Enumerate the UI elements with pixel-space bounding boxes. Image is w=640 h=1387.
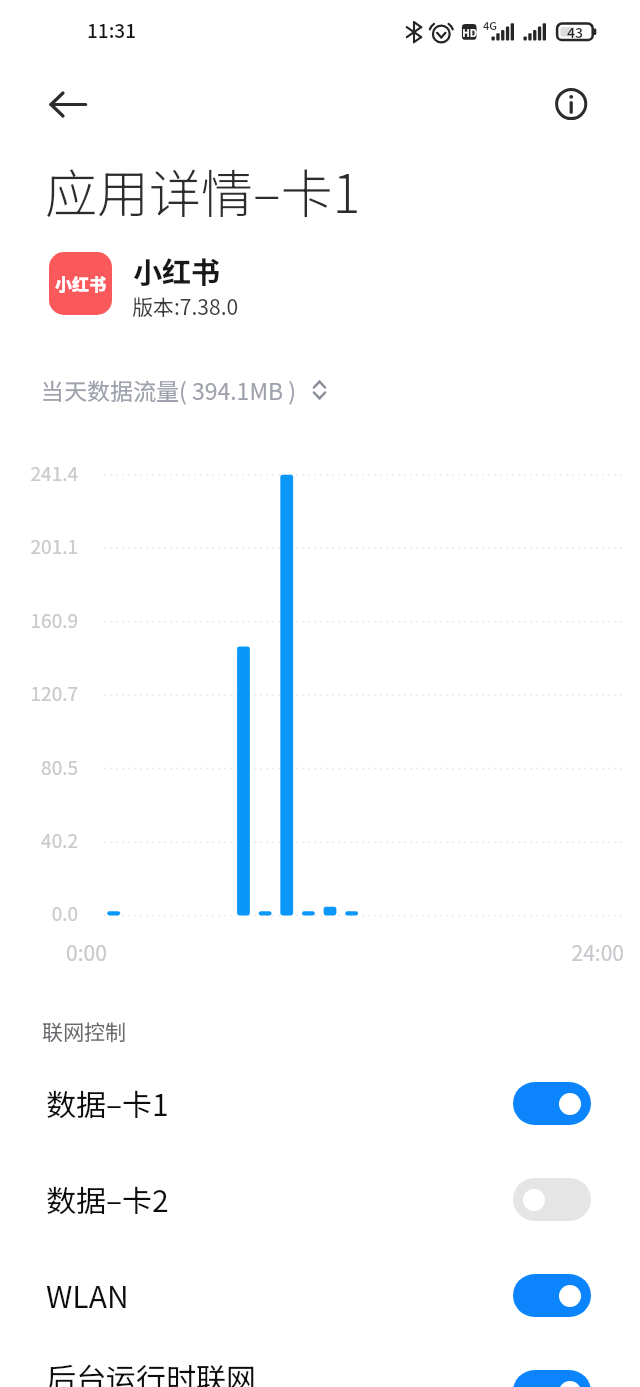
button[interactable]: 数据–卡1: [0, 1058, 640, 1148]
button[interactable]: 数据–卡1 switch: [513, 1082, 591, 1125]
staticText: 201.1: [0, 532, 78, 560]
staticText: 120.7: [0, 679, 78, 707]
staticText: 0:00: [66, 937, 107, 967]
staticText: 后台运行时联网: [46, 1355, 256, 1387]
staticText: 160.9: [0, 606, 78, 634]
staticText: 数据–卡1: [46, 1081, 169, 1124]
staticText: 0.0: [0, 899, 78, 927]
staticText: WLAN: [46, 1273, 129, 1316]
staticText: 数据–卡2: [46, 1177, 169, 1220]
button[interactable]: WLAN switch: [513, 1274, 591, 1317]
staticText: 80.5: [0, 753, 78, 781]
staticText: 43: [559, 22, 591, 42]
staticText: 24:00: [500, 937, 624, 967]
staticText: 241.4: [0, 459, 78, 487]
staticText: HD: [462, 25, 477, 39]
staticText: 当天数据流量( 394.1MB ): [41, 373, 297, 406]
staticText: 联网控制: [42, 1016, 126, 1046]
button[interactable]: 后台运行时联网 switch: [513, 1370, 591, 1387]
staticText: 版本:7.38.0: [132, 291, 239, 321]
button[interactable]: WLAN: [0, 1250, 640, 1340]
staticText: 4G: [483, 17, 497, 33]
staticText: 11:31: [87, 16, 136, 44]
staticText: 40.2: [0, 826, 78, 854]
button[interactable]: 后台运行时联网: [0, 1346, 640, 1387]
staticText: 小红书: [133, 249, 221, 291]
button[interactable]: Back: [40, 76, 97, 133]
button[interactable]: 数据–卡2: [0, 1154, 640, 1244]
button[interactable]: Info: [543, 76, 600, 133]
button[interactable]: 当天数据流量( 394.1MB ): [41, 373, 326, 406]
button[interactable]: 数据–卡2 switch: [513, 1178, 591, 1221]
staticText: 小红书: [55, 271, 106, 296]
staticText: 应用详情–卡1: [45, 153, 361, 228]
